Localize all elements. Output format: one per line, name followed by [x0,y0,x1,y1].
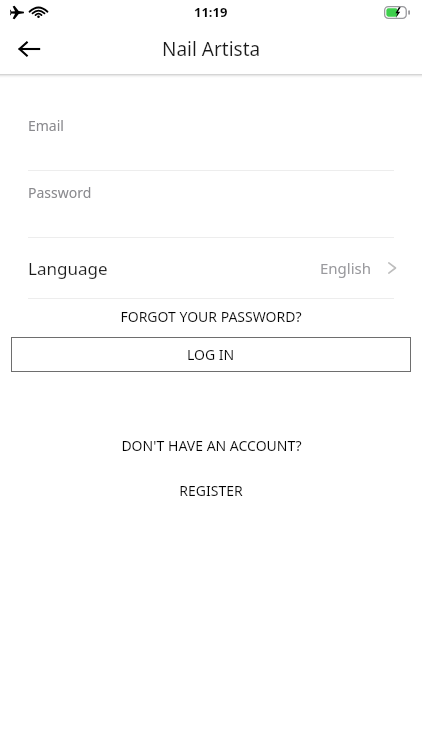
staticText: DON'T HAVE AN ACCOUNT? [121,436,302,455]
button[interactable]: Email [0,104,422,171]
staticText: Password [28,183,92,202]
button[interactable]: FORGOT YOUR PASSWORD? [0,307,422,326]
staticText: 11:19 [194,3,228,21]
staticText: Language [28,257,108,280]
staticText: Email [28,116,64,135]
button[interactable]: Back [12,32,46,66]
button[interactable]: Password [0,171,422,238]
button[interactable]: LOG IN [11,337,411,372]
staticText: Nail Artista [162,36,261,62]
staticText: REGISTER [179,481,243,500]
staticText: LOG IN [187,345,235,364]
button[interactable]: DON'T HAVE AN ACCOUNT? [0,436,422,455]
staticText: English [320,258,372,278]
staticText: FORGOT YOUR PASSWORD? [120,307,302,326]
button[interactable]: REGISTER [0,481,422,500]
button[interactable]: Language [0,238,422,298]
